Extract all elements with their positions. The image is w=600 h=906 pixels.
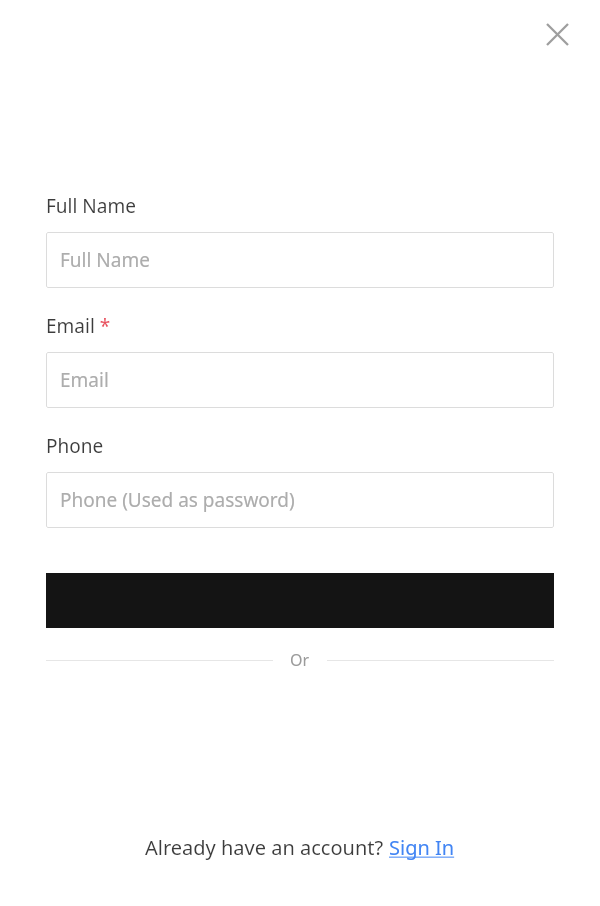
staticText: Email * [46,313,111,339]
button[interactable]: Sign In [389,834,455,861]
staticText: Or [290,649,310,671]
button[interactable]: Phone (Used as password) [46,472,554,528]
staticText: Phone [46,433,104,459]
staticText: Full Name [46,193,136,219]
staticText: Phone (Used as password) [60,487,295,513]
button[interactable]: Email [46,352,554,408]
staticText: Email [60,367,109,393]
staticText: Already have an account? [145,834,389,861]
staticText: Sign In [389,834,455,861]
button[interactable]: Full Name [46,232,554,288]
button[interactable]: Close [533,10,581,58]
staticText: Full Name [60,247,150,273]
